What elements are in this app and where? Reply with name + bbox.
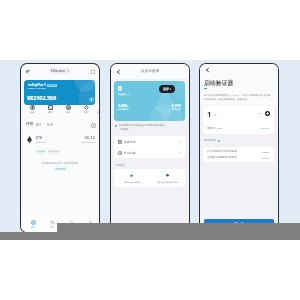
- button[interactable]: 质押: [83, 105, 90, 114]
- button[interactable]: Increase validators: [265, 111, 270, 116]
- button[interactable]: 市场: [46, 220, 58, 229]
- staticText: imKeyPlus 1: [28, 83, 46, 87]
- staticText: 1: [207, 109, 212, 119]
- button[interactable]: Back: [204, 67, 210, 73]
- staticText: 累计奖励: [114, 108, 181, 111]
- staticText: NFT: [36, 123, 42, 127]
- staticText: 收款: [48, 111, 53, 114]
- staticText: 了解更多: [115, 164, 125, 167]
- staticText: 0: [118, 84, 122, 93]
- staticText: 3.56%: [262, 150, 270, 153]
- button[interactable]: Balance info: [89, 97, 94, 102]
- staticText: 当前验证器预期年化收益率: [207, 156, 237, 159]
- staticText: 常见问题: [124, 151, 136, 155]
- staticText: 每个验证器都需要质押 32 个 ETH，为以太坊网络提供安全保障并获得奖励。验证…: [204, 93, 272, 101]
- staticText: 需要存入 ETH: [207, 126, 223, 129]
- staticText: 已质押 ETH: [118, 93, 130, 96]
- button[interactable]: Ethereum: [49, 68, 71, 74]
- button[interactable]: Decrease validators: [258, 111, 263, 116]
- button[interactable]: 了解什么是ETH质押: [114, 169, 149, 187]
- staticText: 代币: [26, 122, 33, 126]
- button[interactable]: 代币: [26, 122, 33, 126]
- staticText: 32 ETH: [261, 126, 270, 129]
- staticText: 预估收益率: [204, 139, 217, 142]
- button[interactable]: 质押记录: [114, 136, 185, 147]
- button[interactable]: imKeyPlus 1: [24, 80, 95, 105]
- button[interactable]: 下一步: [204, 219, 274, 229]
- staticText: 质押记录: [124, 140, 136, 144]
- staticText: 更多以太坊质押相关应用: [157, 181, 178, 183]
- button[interactable]: 添加代币: [53, 167, 68, 170]
- button[interactable]: Back: [115, 69, 121, 75]
- button[interactable]: 更多: [96, 105, 99, 114]
- staticText: 资产: [31, 226, 36, 229]
- button[interactable]: 常见问题: [114, 147, 185, 158]
- staticText: Ethereum: [36, 141, 47, 144]
- staticText: 质押需要等待资格验证后才能获得质押奖励 了解更多 ›: [119, 124, 165, 131]
- staticText: 质押: [84, 111, 89, 114]
- staticText: ¥2273.58: [49, 150, 59, 153]
- staticText: 启动验证器: [204, 79, 233, 86]
- staticText: 以太坊质押: [141, 69, 159, 74]
- button[interactable]: 我的: [84, 220, 96, 229]
- staticText: 更多: [97, 111, 99, 114]
- button[interactable]: 0: [114, 81, 185, 121]
- staticText: 转账: [30, 111, 35, 114]
- staticText: 硬件钱包: [48, 84, 56, 87]
- staticText: 了解什么是ETH质押: [123, 181, 140, 184]
- button[interactable]: 更多以太坊质押相关应用: [149, 169, 185, 187]
- staticText: 质押 ›: [163, 87, 171, 91]
- staticText: 4.07%: [262, 156, 270, 159]
- staticText: +4.44%: [37, 150, 45, 153]
- staticText: 市场: [50, 226, 55, 229]
- staticText: ETH: [36, 135, 43, 140]
- button[interactable]: 收款: [47, 105, 54, 114]
- staticText: 添加代币: [55, 167, 66, 170]
- button[interactable]: Scan QR code: [89, 68, 96, 75]
- button[interactable]: 质押 ›: [159, 85, 175, 93]
- staticText: Ethereum: [51, 69, 66, 73]
- staticText: 没有看到您的代币？尝试手动添加: [42, 162, 78, 165]
- button[interactable]: DeFi: [47, 123, 54, 127]
- button[interactable]: Menu: [24, 68, 31, 75]
- button[interactable]: Token list settings: [91, 123, 96, 128]
- staticText: 兑换: [66, 111, 71, 114]
- button[interactable]: 资产: [27, 220, 39, 229]
- button[interactable]: 浏览: [65, 220, 77, 229]
- button[interactable]: 转账: [29, 105, 36, 114]
- staticText: 36.12: [21, 135, 95, 141]
- staticText: i: [91, 98, 92, 102]
- staticText: 0 ETH: [114, 103, 181, 108]
- button[interactable]: 兑换: [65, 105, 72, 114]
- staticText: 3.80%: [118, 103, 128, 108]
- staticText: DeFi: [47, 123, 54, 127]
- staticText: 以太坊网络平均年化收益率: [207, 150, 237, 153]
- staticText: 下一步: [234, 222, 244, 226]
- staticText: 年化收益率: [118, 108, 129, 111]
- staticText: 个: [214, 113, 217, 116]
- staticText: ≈¥82102.566: [21, 141, 95, 144]
- button[interactable]: NFT: [36, 123, 42, 127]
- staticText: ¥82102.566: [27, 94, 57, 101]
- staticText: 0xd5a1...9f2c4b98: [28, 87, 46, 90]
